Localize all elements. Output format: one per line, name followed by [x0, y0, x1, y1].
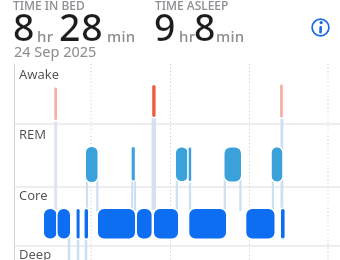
staticText: min: [107, 26, 136, 46]
staticText: Deep: [19, 245, 52, 260]
staticText: hr: [37, 26, 54, 46]
staticText: 8: [194, 1, 217, 52]
staticText: Core: [19, 186, 48, 204]
staticText: 9: [154, 1, 177, 52]
staticText: min: [216, 26, 245, 46]
staticText: hr: [179, 26, 196, 46]
staticText: Awake: [19, 65, 60, 83]
staticText: 8: [13, 1, 36, 52]
staticText: TIME ASLEEP: [155, 0, 229, 13]
staticText: REM: [19, 125, 47, 143]
staticText: 28: [59, 1, 104, 52]
staticText: 24 Sep 2025: [14, 41, 97, 61]
staticText: TIME IN BED: [13, 0, 85, 13]
button[interactable]: [308, 15, 333, 40]
